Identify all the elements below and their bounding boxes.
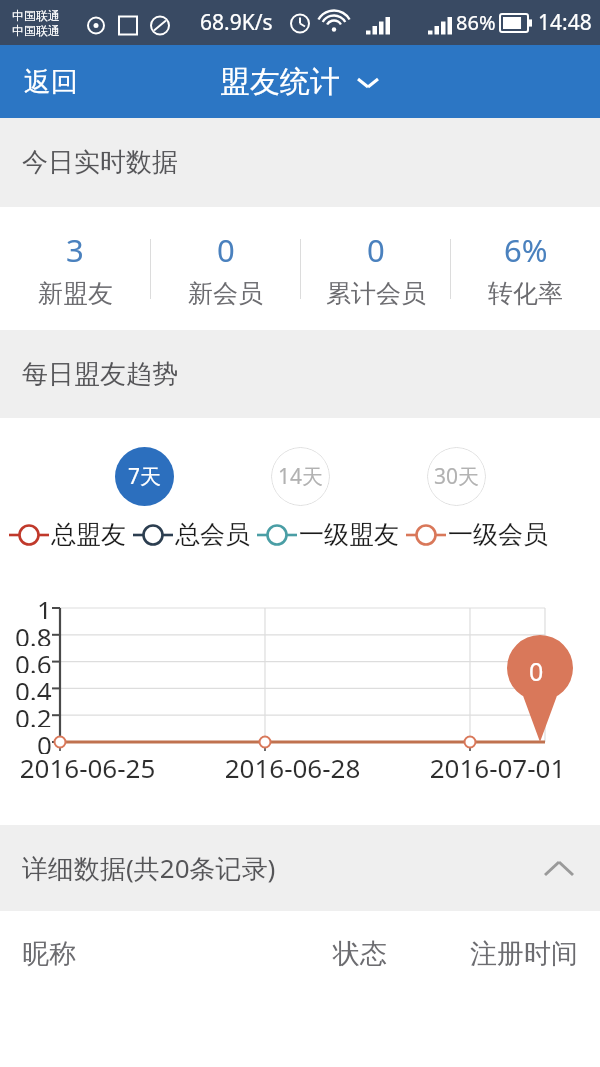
staticText: 每日盟友趋势 bbox=[22, 358, 178, 391]
button[interactable]: 14天 bbox=[271, 447, 330, 506]
staticText: 0 bbox=[37, 727, 52, 754]
staticText: 总盟友 bbox=[51, 519, 126, 550]
staticText: 详细数据(共20条记录) bbox=[22, 850, 276, 886]
staticText: 新会员 bbox=[188, 278, 263, 309]
staticText: 0 bbox=[529, 654, 544, 688]
staticText: 昵称 bbox=[22, 937, 280, 971]
staticText: 0.2 bbox=[15, 700, 52, 727]
staticText: 转化率 bbox=[488, 278, 563, 309]
staticText: 3 bbox=[66, 229, 84, 271]
button[interactable]: 0 bbox=[151, 207, 300, 330]
staticText: 一级盟友 bbox=[299, 519, 399, 550]
button[interactable]: 3 bbox=[0, 207, 150, 330]
staticText: 6% bbox=[504, 229, 548, 271]
staticText: 2016-07-01 bbox=[410, 750, 585, 785]
button[interactable]: 详细数据(共20条记录) bbox=[0, 825, 600, 911]
button[interactable]: 7天 bbox=[115, 447, 174, 506]
staticText: 新盟友 bbox=[38, 278, 113, 309]
button[interactable]: 30天 bbox=[427, 447, 486, 506]
staticText: 0.8 bbox=[15, 619, 52, 646]
other: Collapse details bbox=[544, 860, 574, 877]
staticText: 1 bbox=[37, 592, 52, 619]
staticText: 中国联通 bbox=[12, 23, 60, 38]
staticText: 一级会员 bbox=[448, 519, 548, 550]
staticText: 注册时间 bbox=[440, 937, 578, 971]
button[interactable]: 6% bbox=[451, 207, 600, 330]
staticText: 盟友统计 bbox=[220, 63, 340, 101]
staticText: 2016-06-28 bbox=[205, 750, 380, 785]
staticText: 今日实时数据 bbox=[22, 146, 178, 179]
staticText: 中国联通 bbox=[12, 8, 60, 23]
staticText: 7天 bbox=[128, 462, 162, 491]
staticText: 2016-06-25 bbox=[0, 750, 175, 785]
staticText: 总会员 bbox=[175, 519, 250, 550]
staticText: 0.6 bbox=[15, 646, 52, 673]
button[interactable]: 返回 bbox=[0, 45, 102, 118]
button[interactable]: 盟友统计 bbox=[208, 55, 392, 109]
staticText: 状态 bbox=[280, 937, 440, 971]
staticText: 累计会员 bbox=[326, 278, 426, 309]
staticText: 0 bbox=[367, 229, 385, 271]
staticText: 30天 bbox=[434, 462, 480, 491]
staticText: 0 bbox=[217, 229, 235, 271]
staticText: 14:48 bbox=[538, 8, 592, 37]
staticText: 0.4 bbox=[15, 673, 52, 700]
staticText: 14天 bbox=[278, 462, 324, 491]
button[interactable]: 0 bbox=[301, 207, 450, 330]
staticText: 68.9K/s bbox=[200, 8, 273, 37]
staticText: 返回 bbox=[24, 65, 78, 99]
staticText: 86% bbox=[456, 9, 496, 36]
